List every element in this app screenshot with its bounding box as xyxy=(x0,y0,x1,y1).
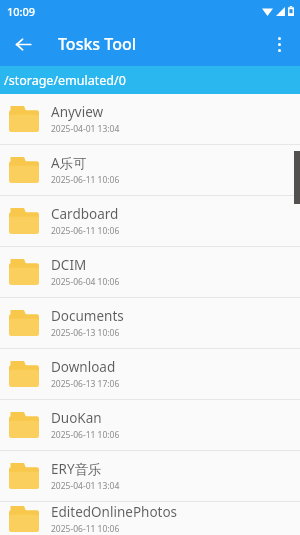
button[interactable]: Download xyxy=(0,349,300,400)
button[interactable]: EditedOnlinePhotos xyxy=(0,502,300,535)
button[interactable]: Documents xyxy=(0,298,300,349)
button[interactable]: DuoKan xyxy=(0,400,300,451)
staticText: Documents xyxy=(51,307,124,325)
staticText: 2025-06-11 10:06 xyxy=(51,174,120,186)
staticText: /storage/emulated/0 xyxy=(4,72,126,89)
staticText: A乐可 xyxy=(51,154,87,172)
staticText: 10:09 xyxy=(7,4,36,19)
button[interactable]: Anyview xyxy=(0,94,300,145)
button[interactable]: ERY音乐 xyxy=(0,451,300,502)
staticText: 2025-06-13 17:06 xyxy=(51,378,120,390)
staticText: 2025-04-01 13:04 xyxy=(51,480,120,492)
button[interactable]: A乐可 xyxy=(0,145,300,196)
staticText: Tosks Tool xyxy=(58,33,137,55)
staticText: 2025-06-11 10:06 xyxy=(51,225,120,237)
staticText: 2025-06-11 10:06 xyxy=(51,523,120,535)
staticText: Download xyxy=(51,358,116,376)
button[interactable]: Cardboard xyxy=(0,196,300,247)
button[interactable]: More options xyxy=(262,27,296,61)
staticText: Cardboard xyxy=(51,205,119,223)
staticText: 2025-06-04 10:06 xyxy=(51,276,120,288)
staticText: EditedOnlinePhotos xyxy=(51,503,178,521)
staticText: 2025-06-13 10:06 xyxy=(51,327,120,339)
staticText: ERY音乐 xyxy=(51,460,102,478)
button[interactable]: Back xyxy=(6,27,40,61)
staticText: DuoKan xyxy=(51,409,102,427)
staticText: 2025-06-11 10:06 xyxy=(51,429,120,441)
button[interactable]: DCIM xyxy=(0,247,300,298)
staticText: Anyview xyxy=(51,103,104,121)
staticText: 2025-04-01 13:04 xyxy=(51,123,120,135)
staticText: DCIM xyxy=(51,256,87,274)
